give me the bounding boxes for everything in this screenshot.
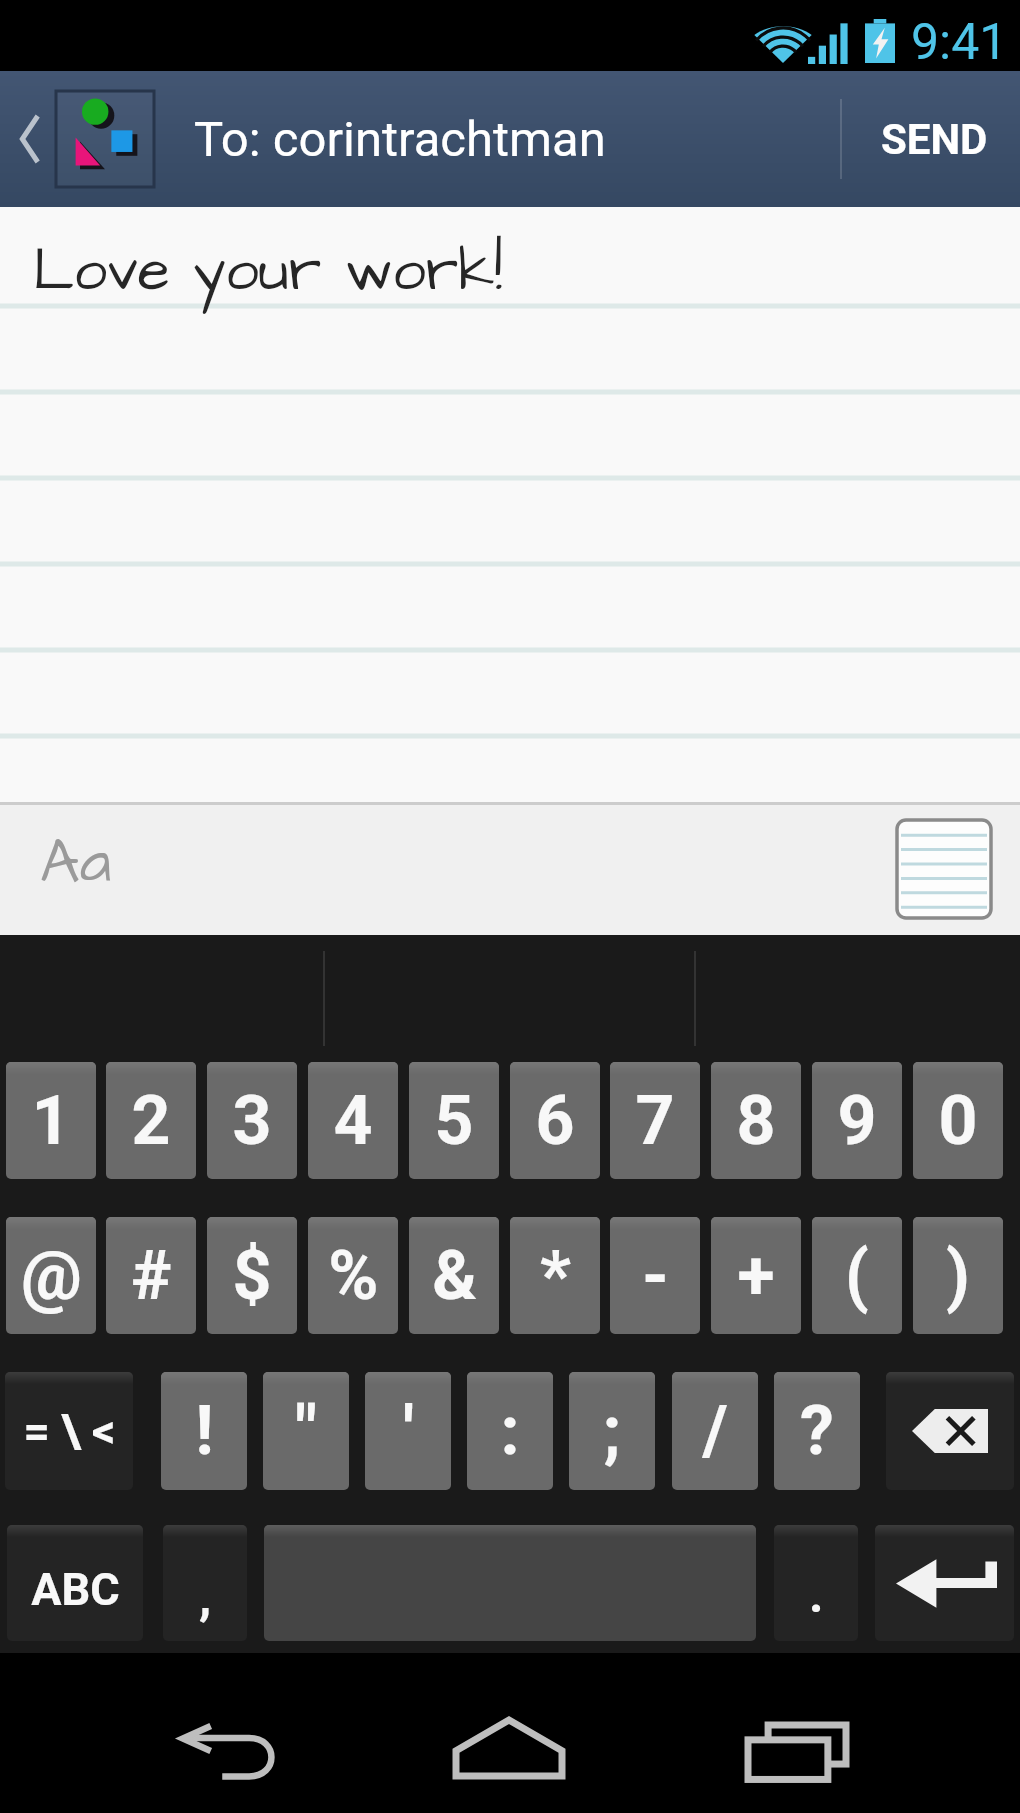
button[interactable]: Enter bbox=[875, 1525, 1014, 1641]
button[interactable]: " bbox=[263, 1372, 349, 1490]
button[interactable]: 9 bbox=[812, 1062, 902, 1179]
staticText: 2 bbox=[131, 1081, 171, 1161]
button[interactable]: ABC bbox=[7, 1525, 143, 1641]
staticText: 9 bbox=[837, 1081, 877, 1161]
button[interactable]: Home bbox=[403, 1656, 618, 1813]
button[interactable]: Back bbox=[120, 1656, 335, 1813]
button[interactable]: Space bbox=[264, 1525, 756, 1641]
staticText: 1 bbox=[31, 1081, 71, 1161]
staticText: Aa bbox=[40, 820, 112, 906]
button[interactable]: 0 bbox=[913, 1062, 1003, 1179]
button[interactable]: ' bbox=[365, 1372, 451, 1490]
staticText: ( bbox=[845, 1236, 869, 1316]
staticText: ! bbox=[195, 1391, 214, 1471]
button[interactable]: 2 bbox=[106, 1062, 196, 1179]
button[interactable]: ? bbox=[774, 1372, 860, 1490]
button[interactable]: + bbox=[711, 1217, 801, 1334]
button[interactable]: . bbox=[774, 1525, 858, 1641]
staticText: ; bbox=[603, 1391, 621, 1471]
staticText: SEND bbox=[881, 115, 988, 164]
staticText: 0 bbox=[938, 1081, 978, 1161]
staticText: @ bbox=[21, 1236, 82, 1316]
button[interactable]: $ bbox=[207, 1217, 297, 1334]
button[interactable]: 3 bbox=[207, 1062, 297, 1179]
button[interactable]: 7 bbox=[610, 1062, 700, 1179]
button[interactable]: / bbox=[672, 1372, 758, 1490]
button[interactable]: @ bbox=[6, 1217, 96, 1334]
staticText: . bbox=[809, 1566, 824, 1625]
button[interactable]: 8 bbox=[711, 1062, 801, 1179]
staticText: * bbox=[540, 1236, 571, 1316]
staticText: ) bbox=[946, 1236, 970, 1316]
staticText: ? bbox=[800, 1391, 834, 1471]
staticText: 4 bbox=[333, 1081, 373, 1161]
button[interactable]: % bbox=[308, 1217, 398, 1334]
button[interactable]: 1 bbox=[6, 1062, 96, 1179]
staticText: 6 bbox=[535, 1081, 575, 1161]
button[interactable]: & bbox=[409, 1217, 499, 1334]
staticText: Love your work! bbox=[33, 231, 503, 313]
staticText: & bbox=[432, 1236, 477, 1316]
staticText: = \ < bbox=[23, 1404, 116, 1458]
staticText: ABC bbox=[31, 1563, 120, 1616]
button[interactable]: 5 bbox=[409, 1062, 499, 1179]
button[interactable]: # bbox=[106, 1217, 196, 1334]
button[interactable]: ! bbox=[161, 1372, 247, 1490]
button[interactable]: Font style bbox=[14, 812, 126, 926]
button[interactable]: Recents bbox=[686, 1656, 901, 1813]
staticText: " bbox=[295, 1391, 317, 1471]
staticText: 9:41 bbox=[911, 13, 1008, 72]
staticText: + bbox=[737, 1236, 775, 1316]
button[interactable]: ( bbox=[812, 1217, 902, 1334]
button[interactable]: Paper style bbox=[897, 820, 991, 918]
staticText: : bbox=[500, 1391, 520, 1471]
button[interactable]: Back bbox=[0, 71, 154, 207]
staticText: 7 bbox=[635, 1081, 675, 1161]
button[interactable]: 4 bbox=[308, 1062, 398, 1179]
staticText: ' bbox=[403, 1391, 414, 1471]
staticText: # bbox=[131, 1236, 172, 1316]
button[interactable]: - bbox=[610, 1217, 700, 1334]
staticText: % bbox=[328, 1236, 379, 1316]
staticText: $ bbox=[232, 1236, 272, 1316]
button[interactable]: = \ < bbox=[5, 1372, 133, 1490]
staticText: / bbox=[702, 1391, 728, 1471]
staticText: 5 bbox=[434, 1081, 474, 1161]
staticText: - bbox=[642, 1236, 669, 1316]
button[interactable]: 6 bbox=[510, 1062, 600, 1179]
button[interactable]: ) bbox=[913, 1217, 1003, 1334]
button[interactable]: SEND bbox=[842, 71, 1020, 207]
staticText: 8 bbox=[736, 1081, 776, 1161]
button[interactable]: : bbox=[467, 1372, 553, 1490]
button[interactable]: * bbox=[510, 1217, 600, 1334]
button[interactable]: Backspace bbox=[886, 1372, 1014, 1490]
staticText: To: corintrachtman bbox=[194, 111, 606, 168]
button[interactable]: , bbox=[163, 1525, 247, 1641]
staticText: , bbox=[199, 1568, 212, 1627]
staticText: 3 bbox=[232, 1081, 272, 1161]
button[interactable]: ; bbox=[569, 1372, 655, 1490]
